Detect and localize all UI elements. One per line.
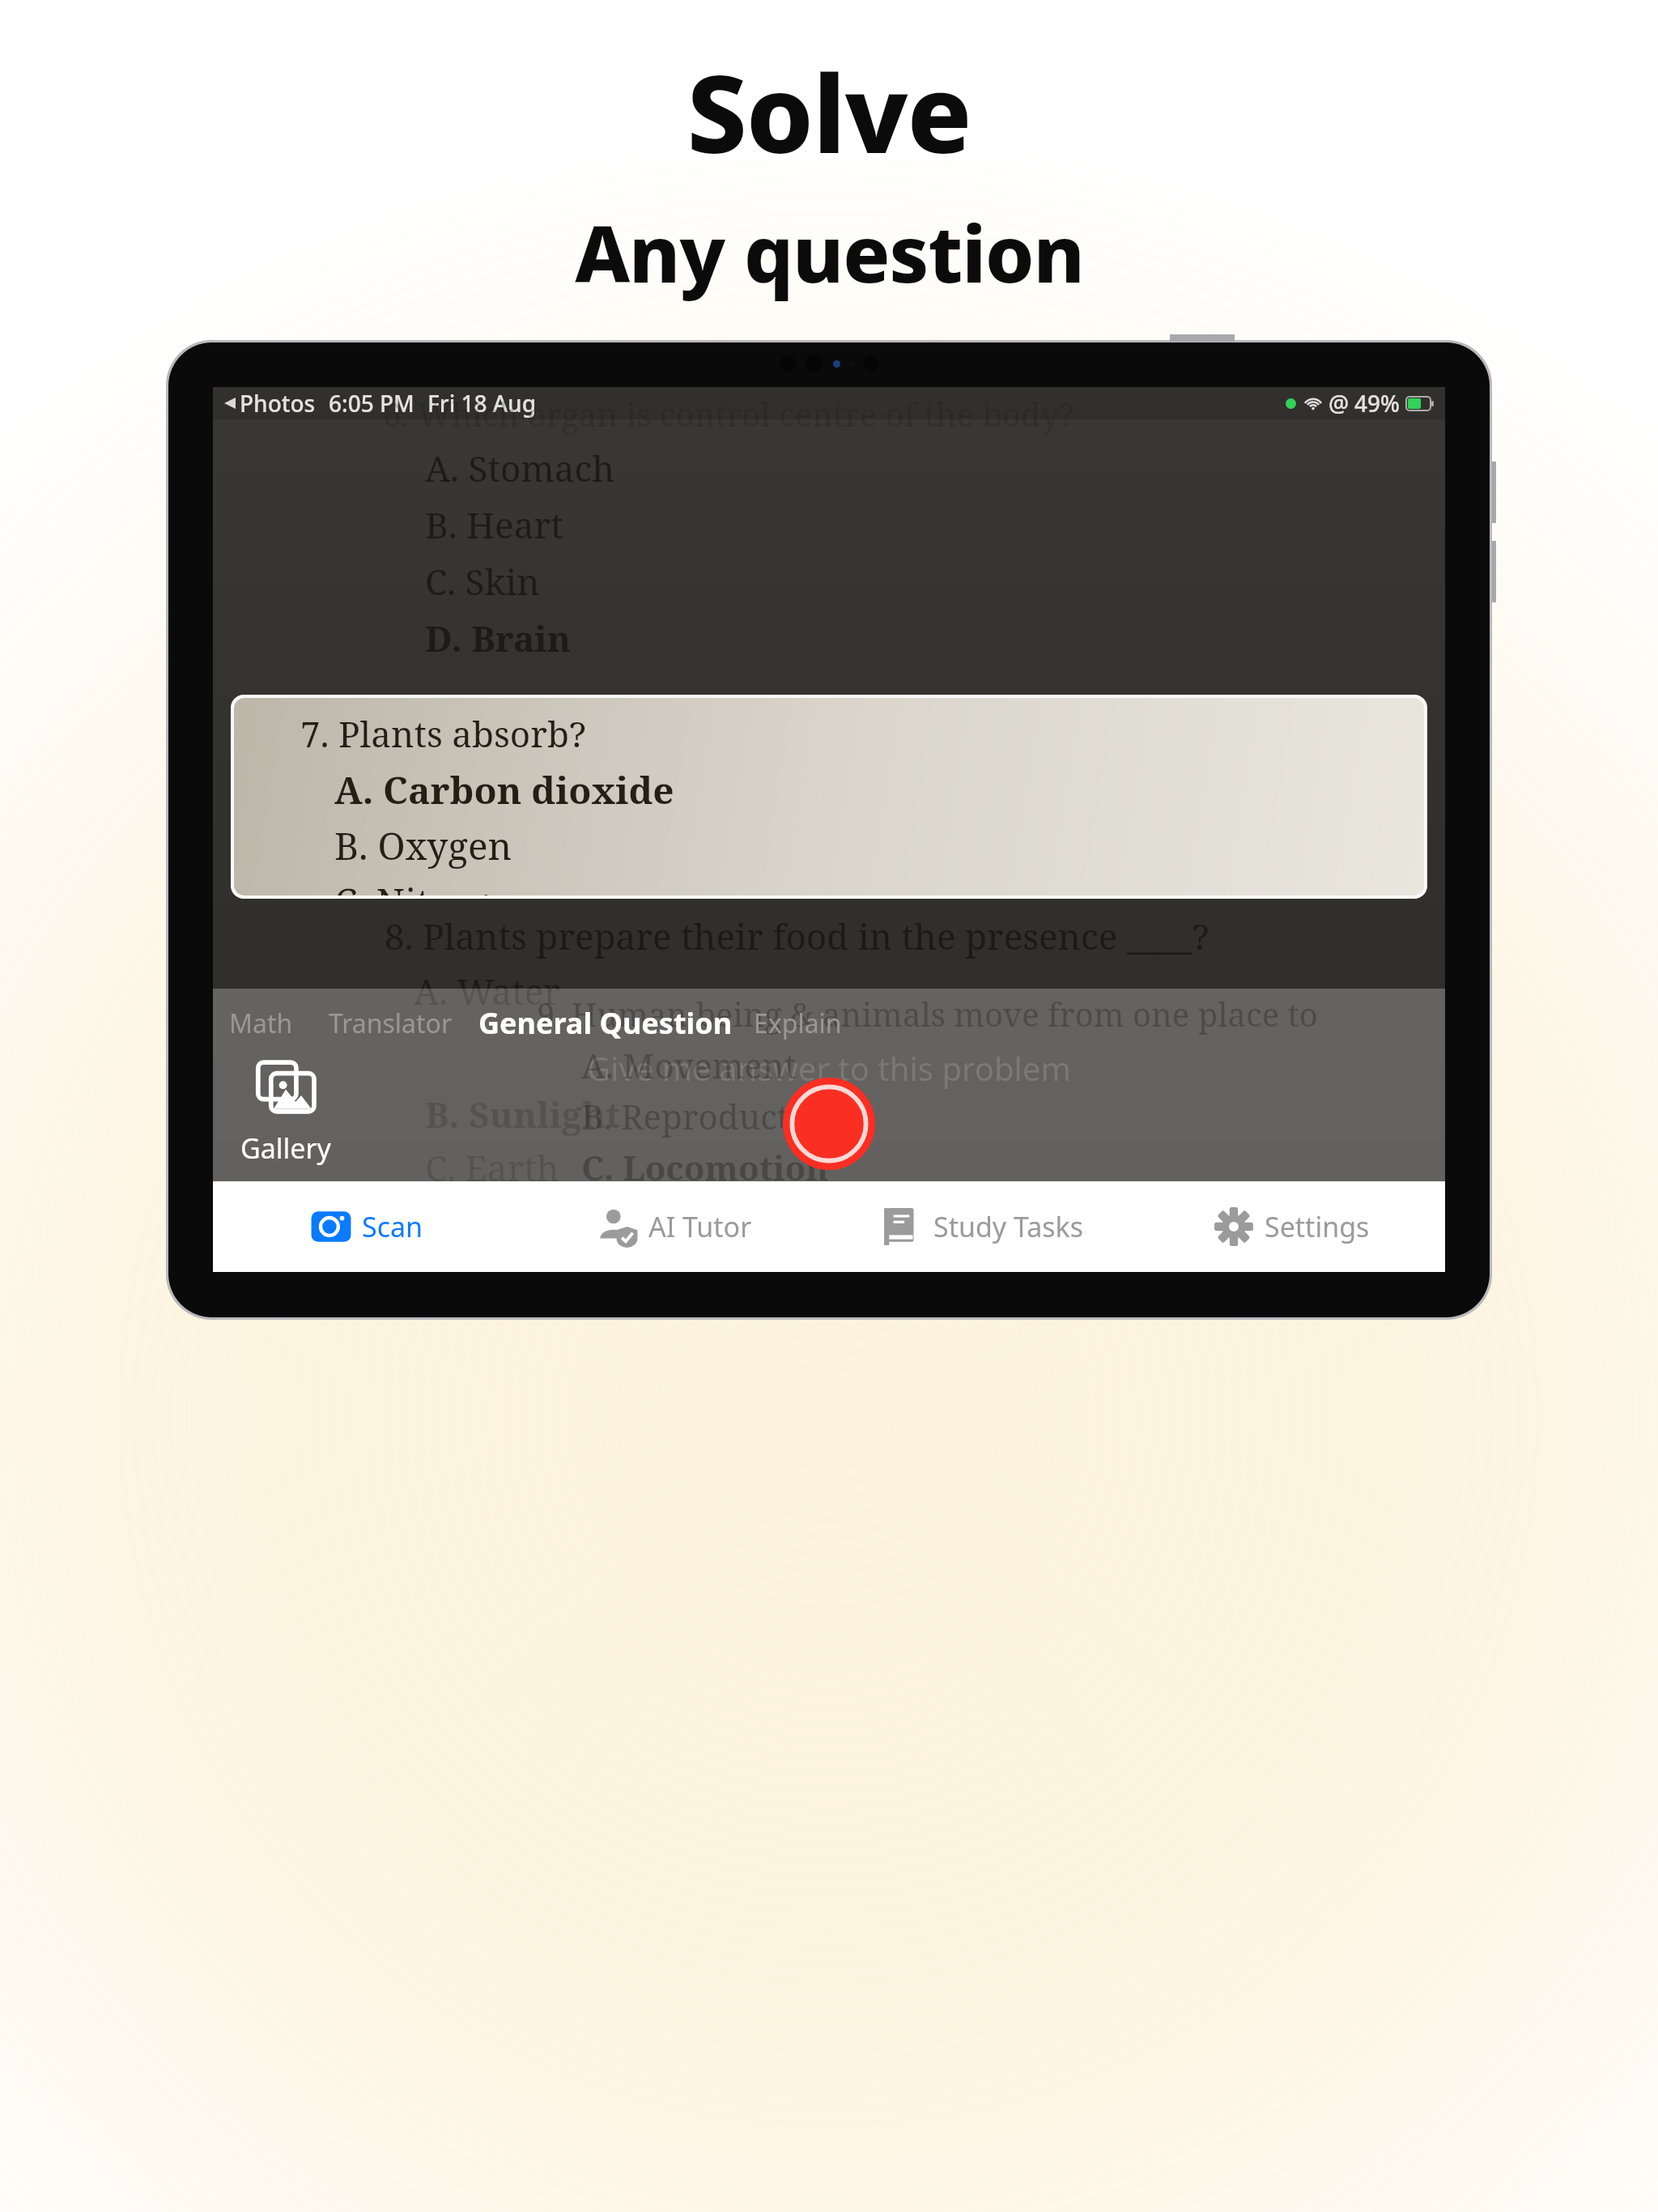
- staticText: Gallery: [240, 1129, 331, 1167]
- button[interactable]: Study Tasks: [828, 1181, 1137, 1272]
- staticText: A. Carbon dioxide: [334, 764, 674, 815]
- staticText: A. Movement: [581, 1042, 797, 1088]
- staticText: Settings: [1265, 1208, 1370, 1245]
- staticText: @: [1329, 388, 1350, 419]
- button[interactable]: Gallery: [240, 1060, 331, 1167]
- staticText: Fri 18 Aug: [427, 388, 537, 419]
- staticText: C. Skin: [425, 557, 540, 606]
- staticText: 49%: [1354, 388, 1400, 419]
- staticText: Translator: [329, 1006, 453, 1041]
- staticText: General Question: [478, 1003, 733, 1043]
- button[interactable]: AI Tutor: [521, 1181, 828, 1272]
- staticText: 9. Human being & animals move from one p…: [537, 992, 1445, 1036]
- button[interactable]: 7. Plants absorb?: [234, 698, 1424, 895]
- staticText: Study Tasks: [933, 1208, 1084, 1245]
- staticText: 7. Plants absorb?: [300, 709, 586, 758]
- button[interactable]: Capture: [783, 1078, 875, 1170]
- button[interactable]: Scan: [213, 1181, 521, 1272]
- staticText: D. Brain: [425, 614, 572, 662]
- staticText: 6. Which organ is control centre of the …: [383, 392, 1074, 436]
- staticText: B. Heart: [425, 500, 563, 549]
- staticText: A. Water: [414, 967, 560, 1015]
- staticText: Scan: [362, 1208, 423, 1245]
- other: Gallery: [255, 1060, 317, 1121]
- button[interactable]: Math: [227, 1002, 295, 1044]
- staticText: B. Oxygen: [334, 820, 512, 871]
- staticText: 6:05 PM: [329, 388, 414, 419]
- staticText: C. Nitrogen: [334, 876, 533, 895]
- staticText: B. Reproduction: [581, 1093, 842, 1139]
- staticText: C. Locomotion: [581, 1144, 829, 1181]
- staticText: Photos: [240, 388, 316, 419]
- staticText: Give me answer to this problem: [587, 1046, 1071, 1090]
- button[interactable]: Settings: [1137, 1181, 1445, 1272]
- staticText: C. Earth: [425, 1143, 559, 1181]
- staticText: 8. Plants prepare their food in the pres…: [385, 912, 1209, 960]
- staticText: B. Sunlight: [425, 1090, 620, 1138]
- staticText: Solve: [687, 39, 971, 185]
- button[interactable]: Translator: [327, 1002, 454, 1044]
- staticText: Any question: [575, 199, 1084, 305]
- button[interactable]: Explain: [752, 1002, 844, 1044]
- staticText: Math: [229, 1006, 293, 1041]
- staticText: A. Stomach: [425, 444, 615, 492]
- button[interactable]: General Question: [477, 1000, 734, 1046]
- staticText: Explain: [754, 1006, 842, 1041]
- staticText: AI Tutor: [648, 1208, 752, 1245]
